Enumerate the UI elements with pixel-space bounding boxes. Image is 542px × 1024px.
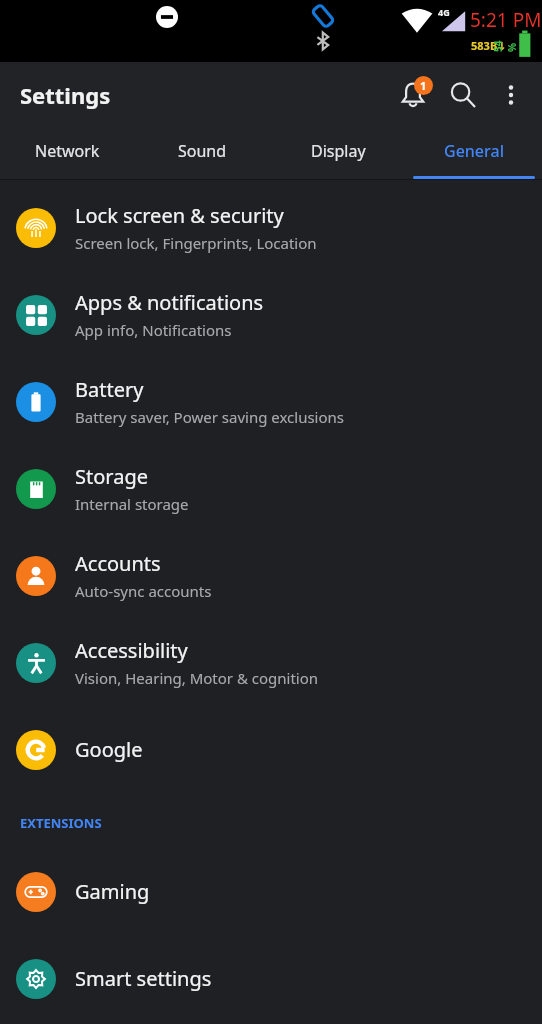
staticText: EXTENSIONS [20,814,102,832]
staticText: Lock screen & security [75,202,284,229]
button[interactable]: Apps & notifications [0,271,542,358]
button[interactable]: Search [438,70,488,120]
button[interactable]: Accounts [0,532,542,619]
button[interactable]: Accessibility [0,619,542,706]
button[interactable]: Battery [0,358,542,445]
staticText: Accessibility [75,637,188,664]
staticText: Battery [75,376,144,403]
staticText: Storage [75,463,148,490]
button[interactable]: Google [0,706,542,793]
staticText: 5:21 PM [470,7,542,33]
staticText: Battery saver, Power saving exclusions [75,407,344,427]
staticText: Google [75,736,143,763]
staticText: Gaming [75,878,150,905]
button[interactable]: More options [488,72,534,118]
staticText: Display [311,140,366,162]
staticText: App info, Notifications [75,320,232,340]
staticText: Accounts [75,550,161,577]
staticText: Network [35,140,100,162]
staticText: 4G [438,6,450,18]
staticText: General [444,140,504,162]
staticText: 54% [491,36,519,52]
staticText: Auto-sync accounts [75,581,212,601]
button[interactable]: General [406,128,542,179]
button[interactable]: Gaming [0,848,542,935]
button[interactable]: Storage [0,445,542,532]
button[interactable]: Notifications [388,70,438,120]
staticText: 1 [420,78,427,93]
staticText: Apps & notifications [75,289,264,316]
button[interactable]: Sound [135,128,270,179]
staticText: Screen lock, Fingerprints, Location [75,233,317,253]
staticText: 583B↓ [471,38,507,53]
staticText: Smart settings [75,965,212,992]
button[interactable]: Network [0,128,135,179]
button[interactable]: Lock screen & security [0,184,542,271]
staticText: Vision, Hearing, Motor & cognition [75,668,319,688]
staticText: Internal storage [75,494,189,514]
button[interactable]: Smart settings [0,935,542,1022]
staticText: Settings [20,80,111,110]
button[interactable]: Display [270,128,406,179]
staticText: Sound [178,140,227,162]
